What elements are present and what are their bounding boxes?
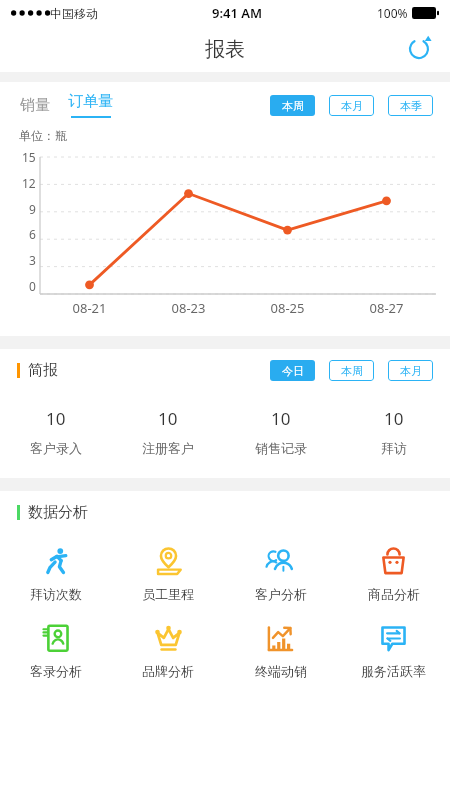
- button[interactable]: 10: [337, 407, 450, 456]
- button[interactable]: 品牌分析: [112, 624, 224, 679]
- staticText: 销售记录: [255, 440, 307, 456]
- staticText: 拜访: [381, 440, 407, 456]
- staticText: 6: [29, 226, 36, 242]
- staticText: 客录分析: [30, 663, 82, 679]
- staticText: 今日: [282, 364, 304, 378]
- staticText: 08-27: [337, 299, 436, 317]
- staticText: 12: [22, 175, 36, 191]
- staticText: 数据分析: [28, 503, 88, 522]
- staticText: 员工里程: [142, 586, 194, 602]
- button[interactable]: 10: [0, 407, 112, 456]
- staticText: 终端动销: [255, 663, 307, 679]
- staticText: 08-23: [139, 299, 238, 317]
- button[interactable]: 客户分析: [224, 547, 337, 602]
- staticText: 10: [158, 407, 178, 430]
- button[interactable]: 10: [224, 407, 337, 456]
- button[interactable]: 本周: [270, 95, 315, 116]
- staticText: 报表: [205, 37, 245, 62]
- button[interactable]: 拜访次数: [0, 547, 112, 602]
- staticText: 3: [29, 252, 36, 268]
- staticText: 本季: [400, 99, 422, 113]
- staticText: 9:41 AM: [212, 4, 263, 22]
- staticText: 10: [384, 407, 404, 430]
- staticText: 本月: [400, 364, 422, 378]
- staticText: 简报: [28, 361, 58, 380]
- staticText: 15: [22, 149, 36, 165]
- staticText: 服务活跃率: [361, 663, 426, 679]
- staticText: 注册客户: [142, 440, 194, 456]
- staticText: 本周: [341, 364, 363, 378]
- button[interactable]: 销量: [20, 96, 50, 115]
- staticText: 08-21: [40, 299, 139, 317]
- button[interactable]: 终端动销: [224, 624, 337, 679]
- button[interactable]: 本季: [388, 95, 433, 116]
- staticText: 10: [46, 407, 66, 430]
- staticText: 品牌分析: [142, 663, 194, 679]
- button[interactable]: 本月: [329, 95, 374, 116]
- staticText: 本周: [282, 99, 304, 113]
- button[interactable]: 服务活跃率: [337, 624, 450, 679]
- staticText: 0: [29, 278, 36, 294]
- button[interactable]: 商品分析: [337, 547, 450, 602]
- button[interactable]: 本月: [388, 360, 433, 381]
- staticText: 客户录入: [30, 440, 82, 456]
- staticText: 客户分析: [255, 586, 307, 602]
- staticText: 9: [29, 201, 36, 217]
- staticText: 商品分析: [368, 586, 420, 602]
- staticText: 中国移动: [50, 6, 98, 21]
- staticText: 单位：瓶: [19, 128, 67, 143]
- button[interactable]: 客录分析: [0, 624, 112, 679]
- staticText: 10: [271, 407, 291, 430]
- staticText: 订单量: [68, 92, 113, 111]
- button[interactable]: 10: [112, 407, 224, 456]
- staticText: 销量: [20, 96, 50, 115]
- button[interactable]: 本周: [329, 360, 374, 381]
- staticText: 本月: [341, 99, 363, 113]
- button[interactable]: 订单量: [68, 92, 113, 118]
- staticText: 拜访次数: [30, 586, 82, 602]
- staticText: 100%: [377, 5, 408, 21]
- button[interactable]: 今日: [270, 360, 315, 381]
- button[interactable]: 刷新: [398, 28, 440, 70]
- staticText: 08-25: [238, 299, 337, 317]
- button[interactable]: 员工里程: [112, 547, 224, 602]
